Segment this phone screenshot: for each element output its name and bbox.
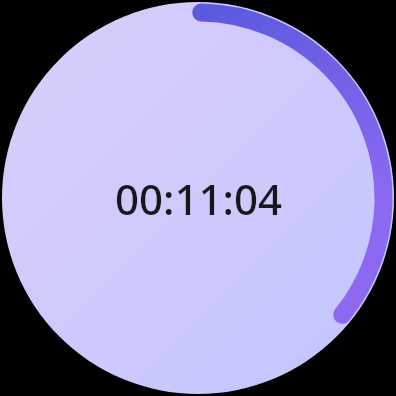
staticText: 00:11:04 <box>115 170 282 227</box>
button[interactable]: Timer, 00:11:04 remaining <box>0 0 396 396</box>
